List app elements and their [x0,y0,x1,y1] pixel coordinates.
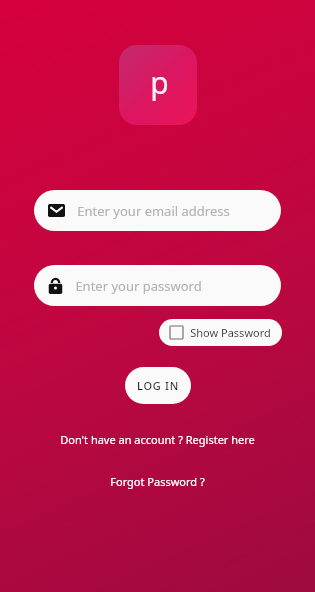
staticText: LOG IN [137,378,179,393]
button[interactable]: Don't have an account ? Register here [50,429,265,450]
button[interactable]: Show Password [159,319,282,346]
button[interactable]: Email address field [34,190,281,231]
staticText: Enter your password [75,277,202,295]
staticText: Enter your email address [77,202,230,220]
button[interactable]: Forgot Password ? [100,471,215,492]
staticText: Don't have an account ? Register here [60,432,255,447]
staticText: Show Password [190,325,271,340]
staticText: p [150,62,169,103]
button[interactable]: Password field [34,265,281,306]
staticText: Forgot Password ? [110,474,205,489]
button[interactable]: LOG IN [125,367,191,404]
